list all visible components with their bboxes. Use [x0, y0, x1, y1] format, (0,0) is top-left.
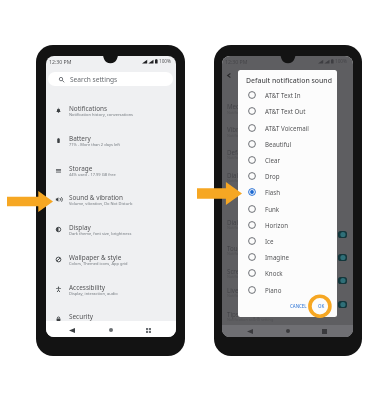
button[interactable]: Ice — [238, 233, 337, 249]
staticText: Dark theme, font size, brightness — [69, 231, 132, 236]
staticText: AT&T Text Out — [265, 107, 306, 115]
staticText: Imagine — [265, 253, 290, 261]
button[interactable]: CANCEL — [287, 300, 310, 312]
staticText: Dial pad tones — [227, 218, 269, 226]
staticText: Default notification — [227, 148, 283, 156]
button[interactable]: Sound & vibration — [46, 187, 176, 217]
staticText: Horizon — [265, 221, 288, 229]
button[interactable]: Funk — [238, 201, 337, 217]
staticText: AT&T Text In — [265, 91, 301, 99]
staticText: Storage — [69, 164, 93, 173]
button[interactable]: Drop — [238, 168, 337, 184]
staticText: OK — [318, 303, 325, 309]
button[interactable]: Security — [46, 306, 176, 336]
button[interactable]: Imagine — [238, 249, 337, 265]
staticText: AT&T Voicemail — [265, 124, 309, 132]
staticText: Media volume — [227, 102, 269, 110]
staticText: 71% - More than 2 days left — [69, 142, 120, 147]
staticText: Notifications — [69, 104, 108, 113]
staticText: Live Caption — [227, 286, 263, 294]
staticText: Beautiful — [265, 140, 292, 148]
button[interactable]: Home — [104, 323, 118, 337]
button[interactable]: Beautiful — [238, 136, 337, 152]
staticText: Default notification sound — [246, 76, 332, 85]
staticText: 12:30 PM — [49, 58, 72, 65]
staticText: Sound & vibration — [69, 193, 123, 202]
staticText: Notification sound setting — [227, 133, 274, 138]
button[interactable]: AT&T Voicemail — [238, 120, 337, 136]
button[interactable]: Battery — [46, 128, 176, 158]
staticText: Funk — [265, 205, 280, 213]
staticText: 12:30 PM — [225, 58, 248, 65]
staticText: Colors, Themed icons, App grid — [69, 261, 128, 266]
button[interactable]: AT&T Text In — [238, 87, 337, 103]
staticText: Notification sound setting — [227, 155, 274, 160]
staticText: Notification sound setting — [227, 178, 274, 183]
staticText: Display, interaction, audio — [69, 291, 118, 296]
button[interactable]: AT&T Text Out — [238, 103, 337, 119]
button[interactable]: Piano — [238, 282, 337, 298]
staticText: Notification sound setting — [227, 274, 274, 279]
staticText: Volume, vibration, Do Not Disturb — [69, 201, 133, 206]
staticText: Knock — [265, 269, 283, 277]
button[interactable]: OK — [314, 300, 328, 312]
staticText: Piano — [265, 286, 282, 294]
staticText: Wallpaper & style — [69, 253, 122, 262]
staticText: Touch sounds — [227, 244, 268, 252]
staticText: Accessibility — [69, 283, 106, 292]
staticText: Notification sound setting — [227, 225, 274, 230]
staticText: Tips & support — [227, 310, 270, 318]
staticText: Drop — [265, 172, 280, 180]
staticText: Screen lock sound — [227, 267, 280, 275]
button[interactable]: Knock — [238, 265, 337, 281]
staticText: 44% used - 17.99 GB free — [69, 172, 116, 177]
button[interactable]: Notifications — [46, 98, 176, 128]
button[interactable]: Display — [46, 217, 176, 247]
button[interactable]: Search settings — [48, 72, 173, 86]
button[interactable]: Flash — [238, 184, 337, 200]
button[interactable]: Storage — [46, 158, 176, 188]
staticText: Ice — [265, 237, 274, 245]
button[interactable]: Recent apps — [141, 323, 155, 337]
staticText: Battery — [69, 134, 91, 143]
staticText: Notification sound setting — [227, 251, 274, 256]
staticText: Dial pad tones — [227, 171, 269, 179]
staticText: Notification sound setting — [227, 110, 274, 115]
staticText: Screen lock, Find My Device — [69, 320, 121, 325]
staticText: Search settings — [70, 75, 118, 84]
staticText: Notification history, conversations — [69, 112, 134, 117]
button[interactable]: Horizon — [238, 217, 337, 233]
button[interactable]: Back — [65, 323, 79, 337]
staticText: Flash — [265, 188, 281, 196]
button[interactable]: Wallpaper & style — [46, 247, 176, 277]
staticText: CANCEL — [290, 303, 307, 309]
staticText: Notification sound setting — [227, 293, 274, 298]
staticText: Clear — [265, 156, 281, 164]
staticText: 100% — [335, 58, 347, 64]
button[interactable]: Accessibility — [46, 277, 176, 307]
staticText: Security — [69, 312, 93, 321]
button[interactable]: Clear — [238, 152, 337, 168]
staticText: 100% — [159, 58, 171, 64]
staticText: Display — [69, 223, 91, 232]
staticText: Vibration & haptics — [227, 125, 283, 133]
